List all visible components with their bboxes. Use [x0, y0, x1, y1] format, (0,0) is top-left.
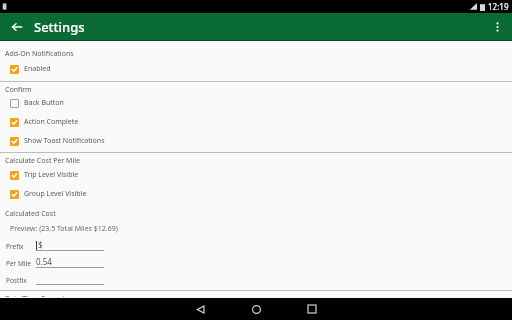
button[interactable]: Back	[183, 298, 217, 320]
button[interactable]: Group Level Visible	[0, 181, 512, 200]
staticText: Show Toast Notifications	[24, 136, 105, 146]
staticText: Confirm	[5, 85, 32, 95]
button[interactable]: Back	[6, 16, 28, 38]
staticText: Date/Time Format	[5, 294, 65, 297]
button[interactable]: Action Complete	[0, 109, 512, 128]
staticText: $	[38, 239, 43, 250]
staticText: Back Button	[24, 98, 64, 108]
button[interactable]: Postfix	[0, 268, 512, 285]
staticText: 12:19	[488, 1, 509, 12]
staticText: Prefix	[6, 242, 24, 251]
staticText: Action Complete	[24, 117, 79, 127]
button[interactable]: Show Toast Notifications	[0, 128, 512, 147]
button[interactable]: Per Mile	[0, 251, 512, 268]
button[interactable]: Enabled	[0, 60, 512, 75]
staticText: Calculated Cost	[5, 209, 56, 219]
staticText: Preview: (23.5 Total Miles $12.69)	[10, 224, 118, 234]
staticText: Settings	[34, 18, 85, 36]
button[interactable]: Trip Level Visible	[0, 167, 512, 181]
staticText: Add-On Notifications	[5, 49, 74, 59]
staticText: Trip Level Visible	[24, 170, 79, 180]
staticText: Postfix	[6, 276, 27, 285]
staticText: Per Mile	[6, 259, 31, 268]
button[interactable]: Home	[239, 298, 273, 320]
button[interactable]: Back Button	[0, 96, 512, 109]
staticText: 0.54	[36, 256, 52, 267]
button[interactable]: Recent apps	[295, 298, 329, 320]
staticText: Enabled	[24, 64, 51, 74]
button[interactable]: Prefix	[0, 234, 512, 251]
staticText: Group Level Visible	[24, 189, 87, 199]
button[interactable]: More options	[486, 16, 508, 38]
staticText: Calculate Cost Per Mile	[5, 156, 81, 166]
